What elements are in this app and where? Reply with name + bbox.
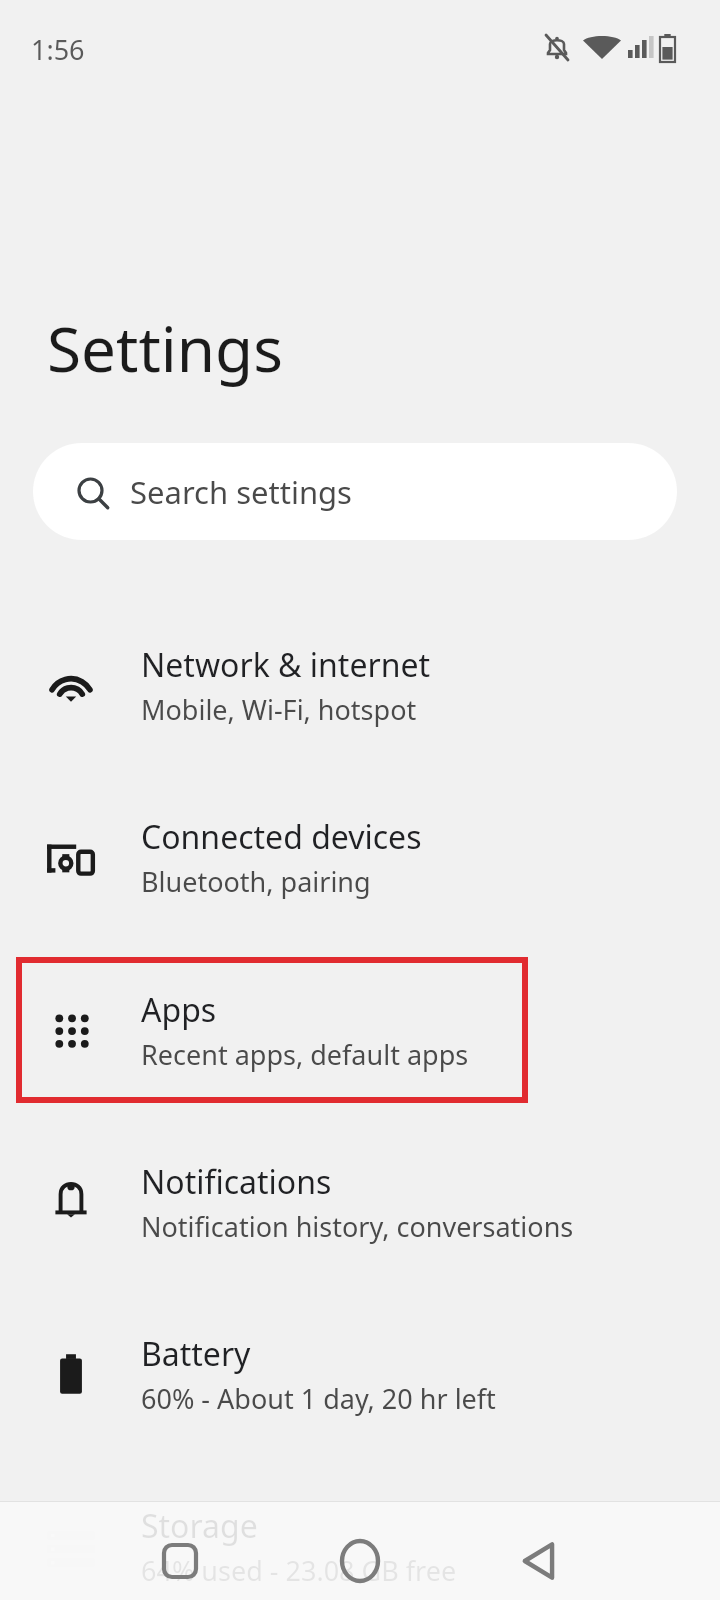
- button[interactable]: Connected devices: [0, 782, 720, 932]
- staticText: Search settings: [130, 471, 352, 513]
- button[interactable]: Notifications: [0, 1127, 720, 1277]
- button[interactable]: Battery: [0, 1299, 720, 1449]
- staticText: Notifications: [141, 1160, 332, 1204]
- button[interactable]: Network & internet: [0, 610, 720, 760]
- staticText: 1:56: [31, 31, 85, 68]
- button[interactable]: Search settings: [33, 443, 677, 540]
- staticText: Settings: [47, 306, 283, 390]
- staticText: Battery: [141, 1332, 251, 1376]
- staticText: 60% - About 1 day, 20 hr left: [141, 1380, 496, 1417]
- staticText: Storage: [141, 1504, 258, 1548]
- staticText: Network & internet: [141, 643, 431, 687]
- staticText: Bluetooth, pairing: [141, 863, 371, 900]
- staticText: 64% used - 23.08 GB free: [141, 1552, 457, 1589]
- staticText: Mobile, Wi-Fi, hotspot: [141, 691, 417, 728]
- staticText: Notification history, conversations: [141, 1208, 574, 1245]
- staticText: Connected devices: [141, 815, 422, 859]
- button[interactable]: Back: [490, 1513, 586, 1600]
- staticText: Recent apps, default apps: [141, 1036, 469, 1073]
- button[interactable]: Storage: [0, 1471, 720, 1600]
- button[interactable]: Home: [312, 1513, 408, 1600]
- staticText: Apps: [141, 988, 217, 1032]
- button[interactable]: Recent apps: [132, 1513, 228, 1600]
- button[interactable]: Apps: [0, 955, 720, 1105]
